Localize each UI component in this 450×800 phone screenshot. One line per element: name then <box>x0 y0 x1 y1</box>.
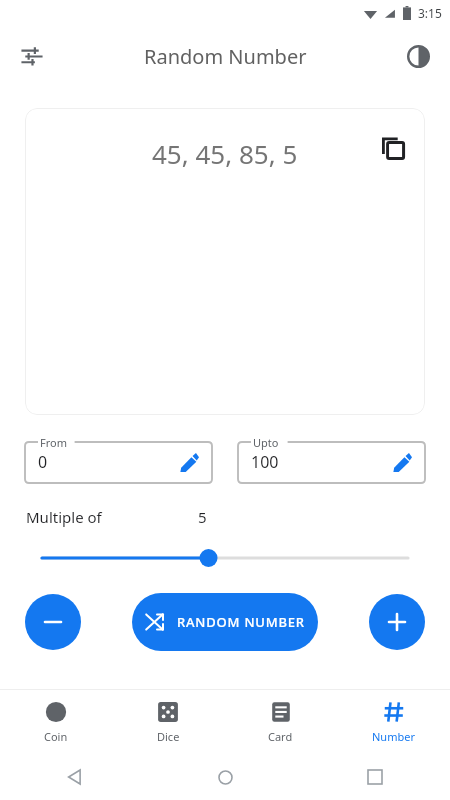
staticText: 0 <box>38 451 48 473</box>
button[interactable]: Toggle theme <box>396 34 440 78</box>
staticText: Random Number <box>144 43 307 70</box>
button[interactable]: Coin <box>0 690 112 754</box>
button[interactable]: From <box>25 435 212 483</box>
button[interactable]: Number <box>337 690 450 754</box>
staticText: 45, 45, 85, 5 <box>152 136 298 171</box>
staticText: From <box>40 435 67 450</box>
staticText: Card <box>268 729 293 744</box>
staticText: 3:15 <box>418 5 442 21</box>
staticText: RANDOM NUMBER <box>177 613 305 631</box>
button[interactable]: Copy <box>375 130 411 166</box>
button[interactable]: Decrease <box>25 594 81 650</box>
button[interactable]: Edit Upto <box>387 447 417 477</box>
button[interactable]: RANDOM NUMBER <box>132 593 318 651</box>
button[interactable]: Upto <box>238 435 425 483</box>
button[interactable]: Multiple of slider <box>0 545 450 571</box>
staticText: Upto <box>253 435 279 450</box>
button[interactable]: Settings <box>10 34 54 78</box>
staticText: 100 <box>251 451 279 473</box>
button[interactable]: Increase <box>369 594 425 650</box>
staticText: Number <box>372 729 415 744</box>
staticText: Dice <box>157 729 180 744</box>
button[interactable]: 45, 45, 85, 5 <box>25 108 425 415</box>
staticText: Coin <box>44 729 68 744</box>
staticText: Multiple of <box>26 507 102 527</box>
button[interactable]: Dice <box>112 690 224 754</box>
staticText: 5 <box>198 507 207 527</box>
button[interactable]: Edit From <box>174 447 204 477</box>
button[interactable]: Card <box>224 690 337 754</box>
